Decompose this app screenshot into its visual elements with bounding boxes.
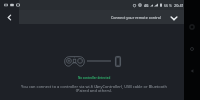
- button[interactable]: Back: [0, 10, 19, 24]
- button[interactable]: Expand: [168, 12, 179, 23]
- staticText: Connect your remote control: [111, 15, 161, 20]
- button[interactable]: Back: [184, 63, 200, 79]
- button[interactable]: Recents: [184, 19, 200, 35]
- staticText: 66 %: [164, 3, 172, 8]
- staticText: You can connect to a controller via wi-f…: [21, 84, 167, 94]
- staticText: 4G: [144, 3, 149, 8]
- button[interactable]: Home: [184, 41, 200, 57]
- staticText: 20:41: [174, 3, 184, 8]
- staticText: No controller detected: [78, 76, 111, 80]
